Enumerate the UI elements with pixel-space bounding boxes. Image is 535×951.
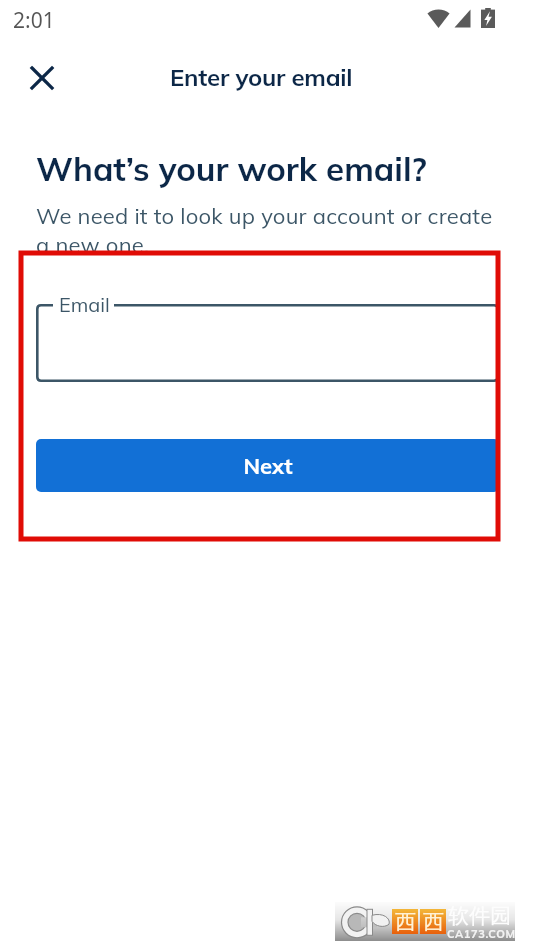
button[interactable]: Next (36, 439, 499, 492)
button[interactable]: Close (20, 56, 64, 100)
staticText: Email (59, 292, 110, 317)
staticText: 2:01 (13, 6, 55, 35)
staticText: What’s your work email? (36, 148, 427, 189)
staticText: CA173.COM (447, 927, 516, 941)
staticText: 西 (395, 909, 416, 934)
staticText: We need it to look up your account or cr… (36, 202, 504, 259)
staticText: Enter your email (170, 62, 353, 92)
staticText: Next (243, 452, 293, 480)
button[interactable]: Email (36, 292, 499, 382)
staticText: 软件园 (448, 903, 511, 929)
staticText: 西 (423, 909, 444, 934)
